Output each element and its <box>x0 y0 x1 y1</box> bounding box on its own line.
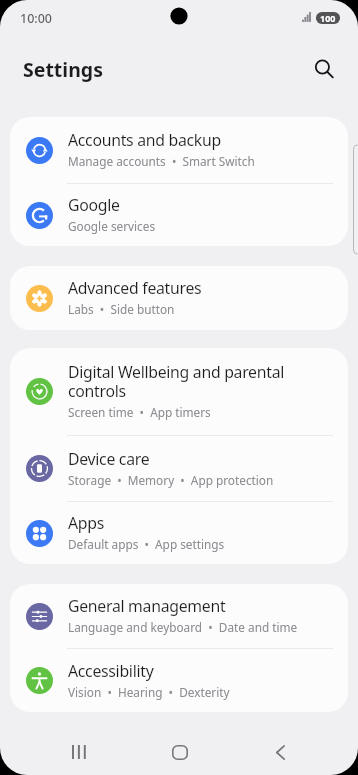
staticText: Advanced features <box>68 277 202 299</box>
staticText: Screen time • App timers <box>68 404 211 420</box>
staticText: Accounts and backup <box>68 129 221 151</box>
staticText: Settings <box>23 56 103 83</box>
button[interactable]: Advanced features <box>10 266 348 330</box>
button[interactable]: Google <box>10 184 348 246</box>
button[interactable]: Recent apps <box>55 728 103 775</box>
staticText: Digital Wellbeing and parental controls <box>68 361 334 402</box>
staticText: Storage • Memory • App protection <box>68 472 274 488</box>
staticText: Language and keyboard • Date and time <box>68 619 298 635</box>
staticText: Google <box>68 194 120 216</box>
staticText: General management <box>68 595 226 617</box>
staticText: Apps <box>68 512 104 534</box>
staticText: 100 <box>320 12 336 24</box>
button[interactable]: Digital Wellbeing and parental controls <box>10 348 348 435</box>
staticText: Vision • Hearing • Dexterity <box>68 684 230 700</box>
staticText: Accessibility <box>68 660 154 682</box>
button[interactable]: Apps <box>10 502 348 564</box>
button[interactable]: Search <box>302 47 346 91</box>
staticText: Device care <box>68 448 150 470</box>
staticText: Google services <box>68 218 156 234</box>
button[interactable]: Device care <box>10 436 348 501</box>
staticText: 10:00 <box>20 10 53 27</box>
button[interactable]: General management <box>10 584 348 648</box>
staticText: Labs • Side button <box>68 301 175 317</box>
staticText: Manage accounts • Smart Switch <box>68 153 255 169</box>
button[interactable]: Home <box>156 728 204 775</box>
button[interactable]: Back <box>256 728 304 775</box>
button[interactable]: Accounts and backup <box>10 117 348 183</box>
staticText: Default apps • App settings <box>68 536 225 552</box>
button[interactable]: Accessibility <box>10 649 348 712</box>
